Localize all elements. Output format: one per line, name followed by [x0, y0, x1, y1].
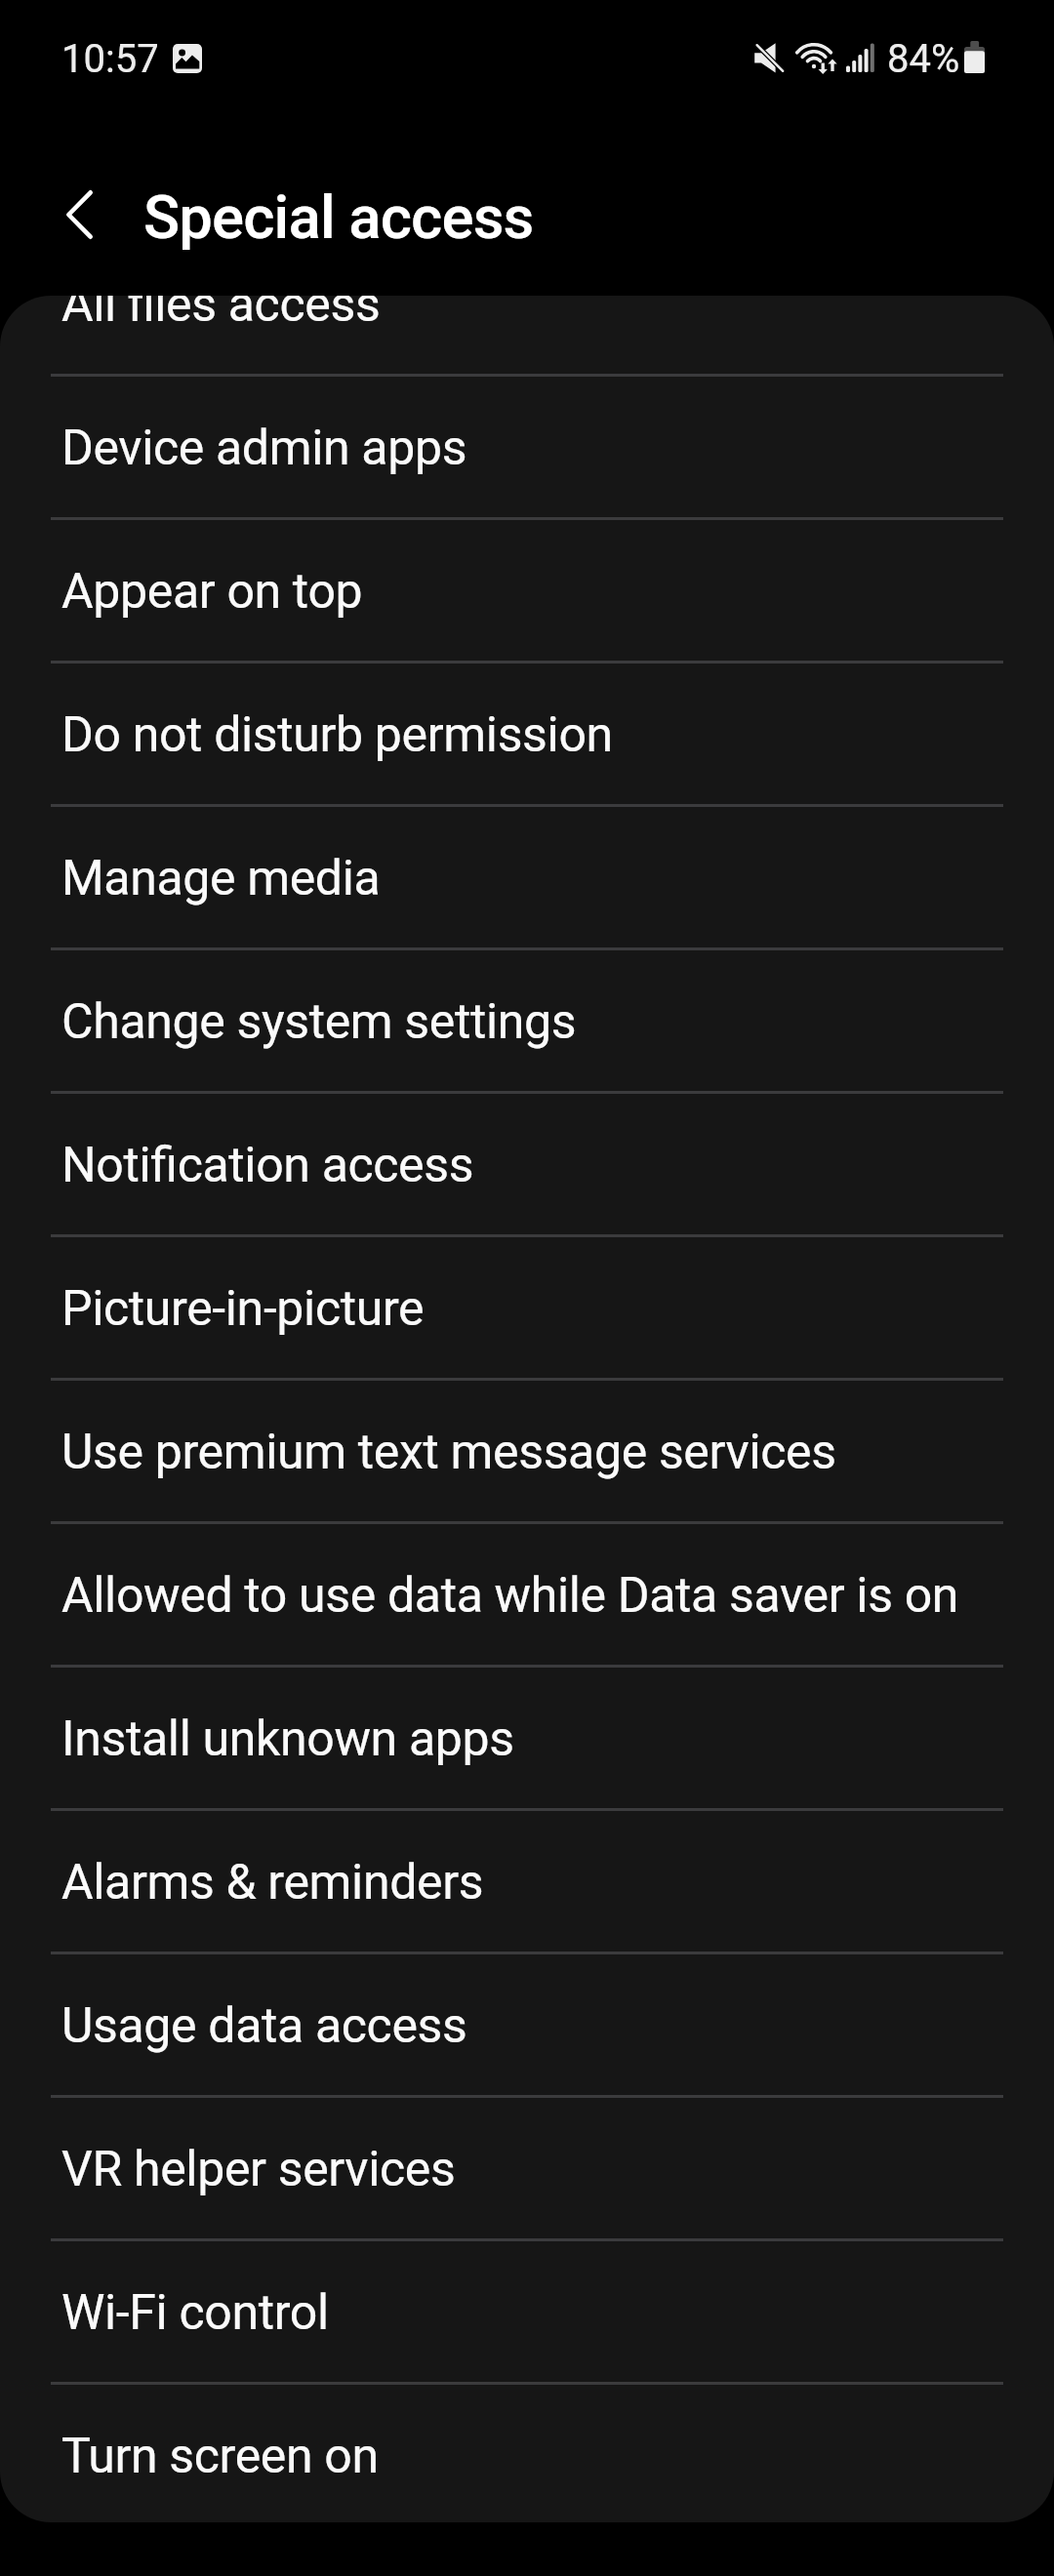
- button[interactable]: Navigate up: [28, 174, 131, 256]
- staticText: VR helper services: [61, 2141, 456, 2198]
- button[interactable]: Change system settings: [0, 950, 1054, 1094]
- button[interactable]: Do not disturb permission: [0, 664, 1054, 807]
- button[interactable]: Install unknown apps: [0, 1668, 1054, 1811]
- staticText: Notification access: [61, 1137, 474, 1194]
- button[interactable]: Appear on top: [0, 520, 1054, 664]
- button[interactable]: Wi-Fi control: [0, 2241, 1054, 2385]
- staticText: Alarms & reminders: [61, 1854, 484, 1912]
- staticText: Appear on top: [61, 563, 363, 621]
- button[interactable]: Manage media: [0, 807, 1054, 950]
- staticText: 10:57: [61, 36, 159, 82]
- staticText: Turn screen on: [61, 2428, 379, 2485]
- button[interactable]: Usage data access: [0, 1954, 1054, 2098]
- staticText: Use premium text message services: [61, 1424, 836, 1481]
- staticText: Wi-Fi control: [61, 2284, 329, 2342]
- staticText: Picture-in-picture: [61, 1280, 425, 1338]
- staticText: Usage data access: [61, 1997, 467, 2055]
- button[interactable]: Allowed to use data while Data saver is …: [0, 1524, 1054, 1668]
- button[interactable]: Device admin apps: [0, 377, 1054, 520]
- button[interactable]: All files access: [0, 296, 1054, 377]
- staticText: Change system settings: [61, 993, 577, 1051]
- staticText: 84%: [887, 36, 960, 82]
- button[interactable]: VR helper services: [0, 2098, 1054, 2241]
- staticText: Special access: [143, 182, 534, 253]
- button[interactable]: Turn screen on: [0, 2385, 1054, 2522]
- staticText: Install unknown apps: [61, 1711, 514, 1768]
- button[interactable]: Use premium text message services: [0, 1381, 1054, 1524]
- button[interactable]: Picture-in-picture: [0, 1237, 1054, 1381]
- button[interactable]: Alarms & reminders: [0, 1811, 1054, 1954]
- staticText: Device admin apps: [61, 420, 467, 477]
- staticText: Manage media: [61, 850, 381, 907]
- staticText: Do not disturb permission: [61, 706, 613, 764]
- staticText: All files access: [61, 296, 381, 334]
- staticText: Allowed to use data while Data saver is …: [61, 1567, 959, 1625]
- button[interactable]: Notification access: [0, 1094, 1054, 1237]
